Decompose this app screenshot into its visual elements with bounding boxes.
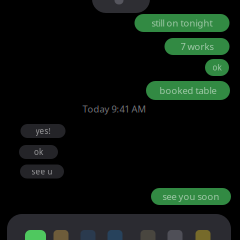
staticText: yes!: [35, 126, 50, 136]
staticText: booked table: [159, 84, 216, 97]
staticText: still on tonight: [151, 17, 212, 29]
button[interactable]: see u: [20, 164, 64, 178]
staticText: ok: [212, 62, 221, 73]
button[interactable]: App Store: [53, 230, 68, 240]
staticText: 7 works: [180, 40, 213, 53]
button[interactable]: Messages: [25, 230, 46, 240]
staticText: ok: [34, 147, 43, 157]
button[interactable]: 7 works: [164, 38, 229, 55]
button[interactable]: Apple Cash: [140, 230, 155, 240]
button[interactable]: Photos: [80, 230, 95, 240]
button[interactable]: ok: [205, 59, 229, 76]
button[interactable]: Stickers: [167, 230, 182, 240]
staticText: see u: [31, 166, 52, 177]
staticText: see you soon: [162, 190, 219, 203]
button[interactable]: see you soon: [151, 188, 231, 205]
button[interactable]: yes!: [20, 124, 65, 138]
button[interactable]: More: [195, 230, 210, 240]
button[interactable]: booked table: [146, 81, 230, 100]
staticText: Today 9:41 AM: [82, 103, 145, 115]
button[interactable]: ok: [19, 145, 58, 159]
button[interactable]: Music: [107, 230, 122, 240]
button[interactable]: still on tonight: [134, 14, 229, 32]
